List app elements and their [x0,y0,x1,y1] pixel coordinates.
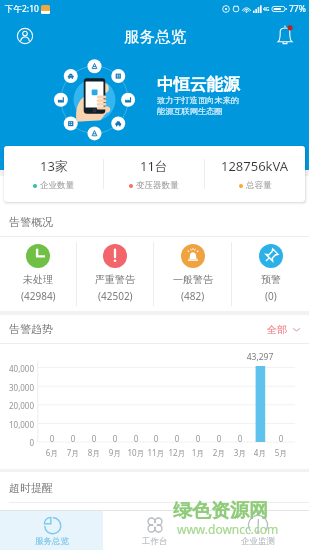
staticText: 1月 [186,447,210,458]
staticText: 2月 [207,447,231,458]
staticText: 40,000 [0,363,34,374]
staticText: 告警概况 [9,215,53,229]
staticText: 致力于打造面向未来的 能源互联网生态圈 [157,95,239,116]
staticText: 严重警告 [95,273,135,286]
staticText: 10,000 [0,419,34,430]
staticText: 服务总览 [124,27,186,47]
button[interactable]: 工作台 [103,511,206,550]
staticText: 6月 [40,447,64,458]
button[interactable]: 严重警告 [77,237,153,311]
staticText: 5月 [269,447,293,458]
button[interactable]: 13家 [4,146,103,202]
staticText: 77% [289,3,306,15]
staticText: 7月 [61,447,85,458]
staticText: 中恒云能源 [157,74,240,95]
button[interactable]: 11台 [104,146,204,202]
staticText: 9月 [103,447,127,458]
staticText: 8月 [82,447,106,458]
button[interactable]: 服务总览 [0,511,103,550]
staticText: www.downcc.com [177,521,279,537]
staticText: 0 [271,433,291,444]
staticText: 4G [263,6,270,13]
staticText: 变压器数量 [136,180,179,191]
staticText: 0 [146,433,166,444]
staticText: 0 [188,433,208,444]
staticText: 13家 [40,157,68,175]
button[interactable]: Account [16,27,34,45]
staticText: 超时提醒 [9,481,53,495]
staticText: 3月 [228,447,252,458]
staticText: (0) [265,289,277,303]
staticText: 服务总览 [35,536,69,547]
staticText: 10月 [124,447,148,458]
staticText: (42984) [21,289,56,303]
staticText: 预警 [261,273,281,286]
button[interactable]: 全部 [267,323,301,336]
staticText: 告警趋势 [9,322,53,336]
staticText: 0 [126,433,146,444]
staticText: 0 [84,433,104,444]
staticText: 一般警告 [173,273,213,286]
staticText: (482) [181,289,205,303]
staticText: 4月 [248,447,272,458]
staticText: 0 [167,433,187,444]
staticText: 企业数量 [40,180,74,191]
staticText: 128756kVA [221,157,289,175]
staticText: 0 [230,433,250,444]
staticText: 20,000 [0,400,34,411]
staticText: 43,297 [244,351,276,363]
button[interactable]: 一般警告 [154,237,231,311]
button[interactable]: 128756kVA [205,146,305,202]
staticText: (42502) [98,289,133,303]
staticText: 0 [42,433,62,444]
staticText: 0 [63,433,83,444]
staticText: 绿色资源网 [173,499,268,523]
staticText: 30,000 [0,382,34,393]
staticText: 11台 [140,157,168,175]
staticText: 下午2:10 [5,3,39,15]
staticText: 0 [105,433,125,444]
staticText: 企业监测 [241,536,275,547]
staticText: 工作台 [142,536,168,547]
button[interactable]: 未处理 [0,237,76,311]
button[interactable]: 企业监测 [206,511,309,550]
staticText: 全部 [267,323,287,336]
button[interactable]: 预警 [232,237,309,311]
staticText: 未处理 [23,273,53,286]
staticText: 11月 [144,447,168,458]
staticText: 0 [209,433,229,444]
staticText: 12月 [165,447,189,458]
button[interactable]: Notifications [276,24,295,43]
staticText: 0 [0,437,34,448]
staticText: 总容量 [246,180,272,191]
